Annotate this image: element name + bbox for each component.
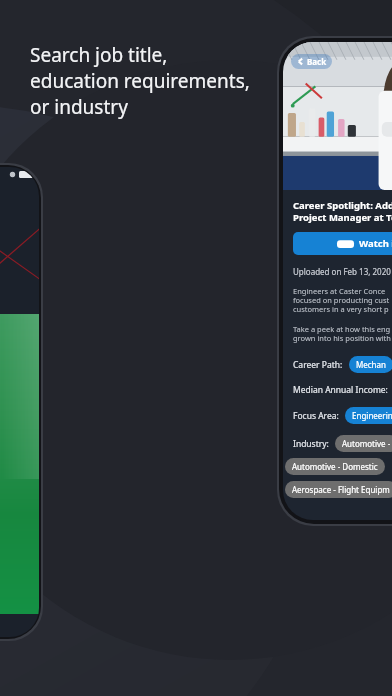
staticText: Mechan	[356, 359, 386, 370]
staticText: Search job title,	[30, 42, 168, 68]
staticText: Industry:	[293, 438, 329, 450]
staticText: Career Spotlight: Add Project Manager at…	[293, 199, 392, 224]
staticText: Back	[307, 56, 327, 67]
staticText: Engineers at Caster Conce focused on pro…	[293, 286, 390, 315]
button[interactable]: Engineerin	[345, 407, 392, 424]
staticText: education requirements,	[30, 68, 250, 94]
staticText: Watch in	[359, 237, 392, 250]
staticText: or industry	[30, 94, 128, 120]
button[interactable]: Automotive -	[335, 435, 392, 452]
button[interactable]: Back	[283, 42, 392, 190]
button[interactable]: Aerospace - Flight Equipm	[285, 481, 392, 498]
staticText: Focus Area:	[293, 410, 339, 422]
staticText: Engineerin	[352, 410, 392, 421]
staticText: Automotive - Domestic	[292, 461, 378, 472]
button[interactable]: Back	[296, 56, 327, 67]
button[interactable]: Watch in	[293, 232, 392, 255]
button[interactable]: Mechan	[349, 356, 392, 373]
staticText: Aerospace - Flight Equipm	[292, 484, 390, 495]
staticText: Median Annual Income:	[293, 384, 388, 396]
staticText: Career Path:	[293, 359, 343, 371]
button[interactable]: Automotive - Domestic	[285, 458, 385, 475]
staticText: Take a peek at how this eng grown into h…	[293, 324, 391, 344]
staticText: Uploaded on Feb 13, 2020	[293, 266, 391, 277]
staticText: Automotive -	[342, 438, 391, 449]
button[interactable]: Cle	[0, 314, 39, 614]
